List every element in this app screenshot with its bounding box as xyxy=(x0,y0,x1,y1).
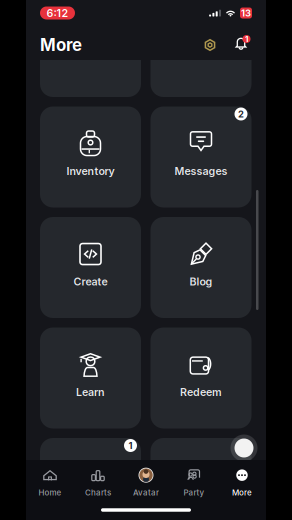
staticText: More xyxy=(40,35,82,55)
button[interactable]: More xyxy=(218,468,266,497)
button[interactable]: Inventory xyxy=(40,106,141,207)
staticText: Home xyxy=(38,488,61,497)
button[interactable]: Home xyxy=(26,468,74,497)
staticText: Inventory xyxy=(66,164,114,177)
button[interactable]: More option xyxy=(40,438,141,520)
button[interactable]: Compose xyxy=(229,433,259,463)
staticText: 2 xyxy=(238,108,244,120)
button[interactable]: Create xyxy=(40,217,141,318)
button[interactable]: More option xyxy=(150,438,251,520)
button[interactable]: Learn xyxy=(40,327,141,428)
staticText: 6:12 xyxy=(46,6,68,19)
button[interactable]: More option xyxy=(150,0,251,97)
staticText: Create xyxy=(73,275,107,288)
button[interactable]: Redeem xyxy=(150,327,251,428)
staticText: Charts xyxy=(85,488,111,497)
button[interactable]: More option xyxy=(40,0,141,97)
staticText: Party xyxy=(183,488,204,497)
button[interactable]: Party xyxy=(170,468,218,497)
staticText: Learn xyxy=(76,385,105,398)
staticText: Blog xyxy=(189,275,212,288)
staticText: 1 xyxy=(245,34,248,44)
button[interactable]: Blog xyxy=(150,217,251,318)
staticText: Redeem xyxy=(180,385,222,398)
staticText: Messages xyxy=(174,164,227,177)
button[interactable]: Charts xyxy=(74,468,122,497)
button[interactable]: Settings xyxy=(199,33,221,57)
button[interactable]: Notifications xyxy=(230,33,252,57)
button[interactable]: Messages xyxy=(150,106,251,207)
staticText: 1 xyxy=(128,440,132,451)
staticText: 13 xyxy=(241,7,251,19)
staticText: Avatar xyxy=(133,488,159,497)
staticText: More xyxy=(232,488,252,497)
button[interactable]: Avatar xyxy=(122,468,170,497)
